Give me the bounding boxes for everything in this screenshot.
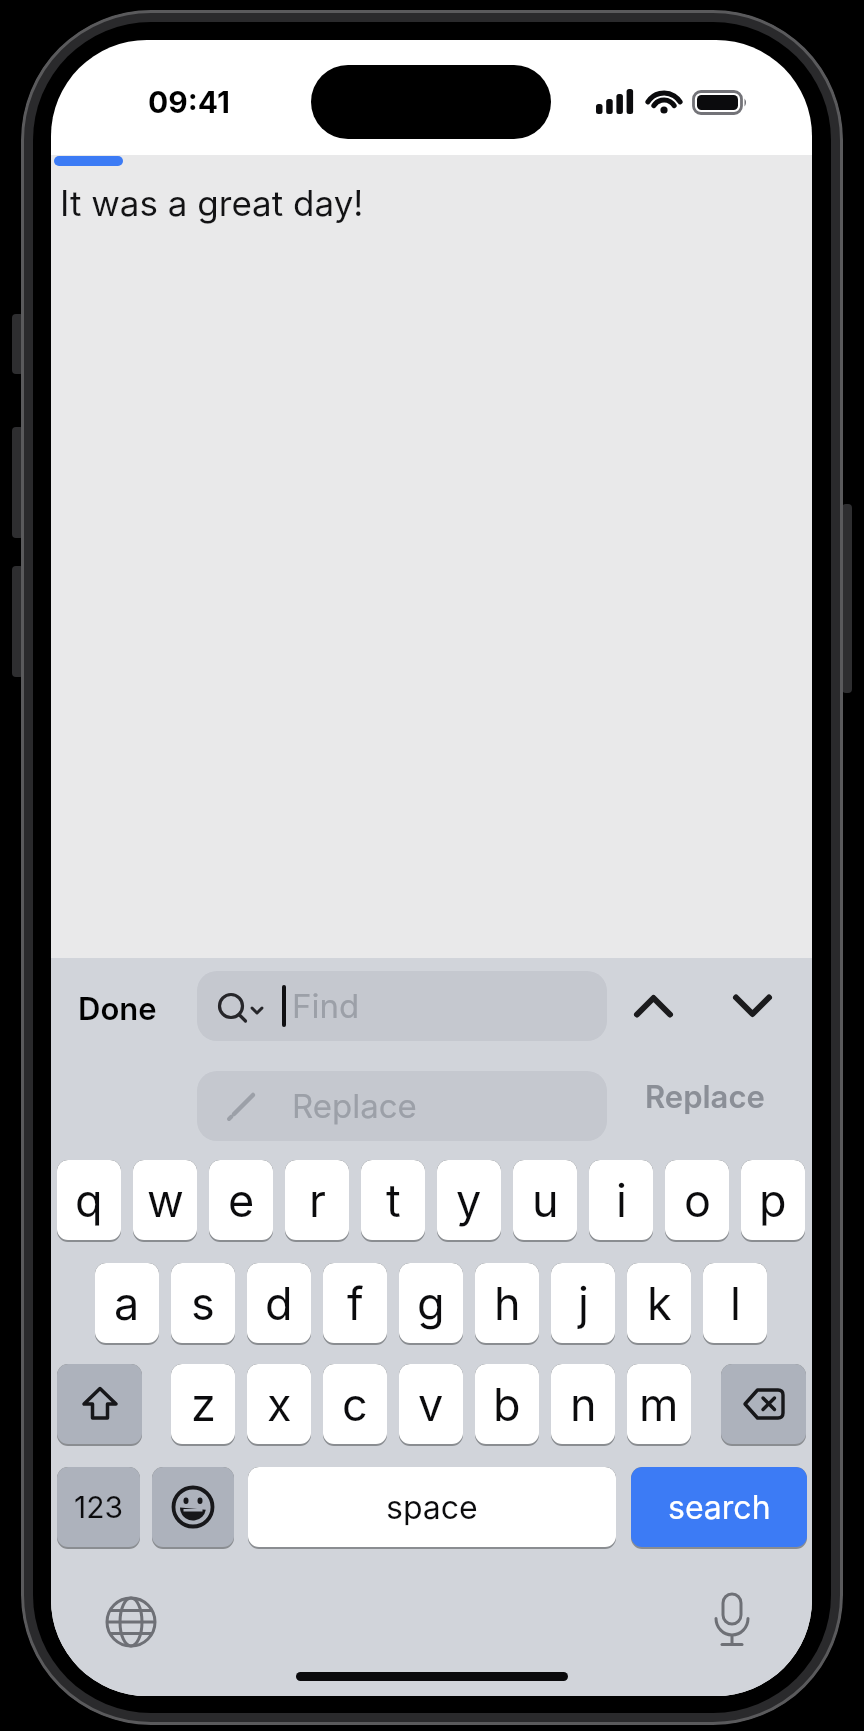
button[interactable]: h [475,1263,539,1345]
button[interactable]: w [133,1160,197,1242]
staticText: Find [292,986,360,1026]
button[interactable]: Done [55,989,179,1029]
button[interactable]: b [475,1364,539,1446]
button[interactable]: a [95,1263,159,1345]
button[interactable]: s [171,1263,235,1345]
staticText: q [75,1173,103,1227]
button[interactable] [708,1591,756,1651]
button[interactable] [621,981,685,1031]
button[interactable] [152,1467,234,1549]
staticText: g [417,1276,445,1330]
staticText: d [265,1276,293,1330]
button[interactable]: f [323,1263,387,1345]
button[interactable]: r [285,1160,349,1242]
button[interactable]: Find [197,971,607,1041]
button[interactable] [720,981,784,1031]
button[interactable]: q [57,1160,121,1242]
staticText: l [730,1276,741,1330]
button[interactable]: space [248,1467,616,1549]
button[interactable]: k [627,1263,691,1345]
staticText: z [191,1377,216,1431]
button[interactable]: u [513,1160,577,1242]
staticText: j [578,1276,589,1330]
button[interactable]: t [361,1160,425,1242]
button[interactable]: n [551,1364,615,1446]
staticText: v [418,1377,444,1431]
button[interactable] [103,1594,159,1650]
button[interactable]: Replace [197,1071,607,1141]
button[interactable] [51,155,812,958]
button[interactable]: x [247,1364,311,1446]
button[interactable]: Replace [621,1077,789,1117]
button[interactable]: d [247,1263,311,1345]
staticText: b [493,1377,521,1431]
staticText: k [647,1276,672,1330]
button[interactable]: z [171,1364,235,1446]
staticText: search [668,1488,771,1527]
button[interactable]: m [627,1364,691,1446]
button[interactable]: y [437,1160,501,1242]
staticText: h [494,1276,521,1330]
button[interactable]: c [323,1364,387,1446]
button[interactable] [721,1364,806,1446]
button[interactable]: search [631,1467,807,1549]
staticText: p [759,1173,787,1227]
staticText: o [684,1173,711,1227]
staticText: y [456,1173,482,1227]
button[interactable]: i [589,1160,653,1242]
staticText: c [342,1377,368,1431]
staticText: n [570,1377,597,1431]
staticText: w [147,1173,184,1227]
staticText: t [386,1173,401,1227]
staticText: i [616,1173,627,1227]
staticText: x [267,1377,292,1431]
staticText: m [639,1377,679,1431]
staticText: Done [78,990,157,1028]
button[interactable] [57,1364,142,1446]
button[interactable]: g [399,1263,463,1345]
staticText: a [114,1276,140,1330]
staticText: It was a great day! [60,182,364,224]
staticText: Replace [645,1078,765,1116]
button[interactable]: 123 [57,1467,140,1549]
button[interactable]: l [703,1263,767,1345]
staticText: 123 [74,1489,124,1525]
staticText: space [386,1488,478,1527]
staticText: e [228,1173,255,1227]
staticText: u [532,1173,559,1227]
staticText: f [347,1276,364,1330]
staticText: r [309,1173,326,1227]
staticText: 09:41 [148,84,230,118]
staticText: s [191,1276,215,1330]
button[interactable]: j [551,1263,615,1345]
button[interactable]: o [665,1160,729,1242]
button[interactable]: v [399,1364,463,1446]
staticText: Replace [292,1086,417,1126]
button[interactable]: e [209,1160,273,1242]
button[interactable]: p [741,1160,805,1242]
